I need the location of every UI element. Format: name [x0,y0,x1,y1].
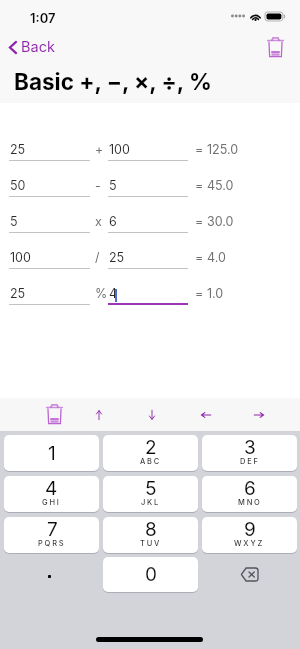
button[interactable]: 6 [202,476,297,512]
staticText: 25 [10,286,26,301]
staticText: - [95,178,101,193]
staticText: 2 [145,436,157,459]
button[interactable]: Backspace [202,557,296,592]
staticText: 9 [244,518,256,541]
button[interactable]: Previous [192,401,219,428]
staticText: JKL [141,498,161,507]
staticText: 30.0 [207,214,234,229]
staticText: / [95,250,100,265]
staticText: 1.0 [207,286,224,301]
staticText: Back [21,38,55,56]
staticText: = [195,286,204,301]
staticText: 4.0 [207,250,226,265]
staticText: 4 [45,477,58,500]
staticText: 25 [109,250,125,265]
staticText: 3 [244,436,256,459]
button[interactable]: Delete [262,34,288,60]
button[interactable]: Next [245,401,272,428]
button[interactable]: Down [138,401,165,428]
button[interactable]: 0 [103,557,198,592]
staticText: ABC [140,457,162,466]
staticText: 5 [145,477,157,500]
button[interactable]: 7 [4,517,99,553]
staticText: 1 [48,442,56,465]
staticText: 6 [244,477,256,500]
staticText: DEF [240,457,260,466]
staticText: 45.0 [207,178,234,193]
staticText: WXYZ [234,539,265,548]
staticText: = [195,142,204,157]
staticText: TUV [140,539,162,548]
staticText: 100 [109,142,130,157]
staticText: = [195,178,204,193]
button[interactable]: Clear [41,401,68,428]
button[interactable]: 3 [202,435,297,471]
staticText: GHI [42,498,61,507]
staticText: 0 [145,563,157,586]
staticText: MNO [238,498,262,507]
staticText: 25 [10,142,26,157]
staticText: PQRS [38,539,66,548]
staticText: 4 [109,286,118,301]
button[interactable]: Decimal point [4,557,99,592]
button[interactable]: 1 [4,435,99,471]
staticText: 6 [109,214,117,229]
button[interactable]: Back [4,35,60,59]
staticText: 100 [10,250,31,265]
staticText: 5 [10,214,18,229]
button[interactable]: 8 [103,517,198,553]
staticText: 8 [145,518,157,541]
staticText: = [195,250,204,265]
staticText: 5 [109,178,117,193]
staticText: + [95,142,104,157]
staticText: Basic +, −, ×, ÷, % [14,68,212,95]
staticText: % [95,286,108,301]
button[interactable]: 9 [202,517,297,553]
staticText: 50 [10,178,26,193]
staticText: 125.0 [207,142,239,157]
staticText: 7 [47,518,58,541]
staticText: x [95,214,102,229]
staticText: 1:07 [30,10,56,26]
staticText: = [195,214,204,229]
button[interactable]: 5 [103,476,198,512]
button[interactable]: 4 [4,476,99,512]
button[interactable]: 2 [103,435,198,471]
button[interactable]: Up [85,401,112,428]
